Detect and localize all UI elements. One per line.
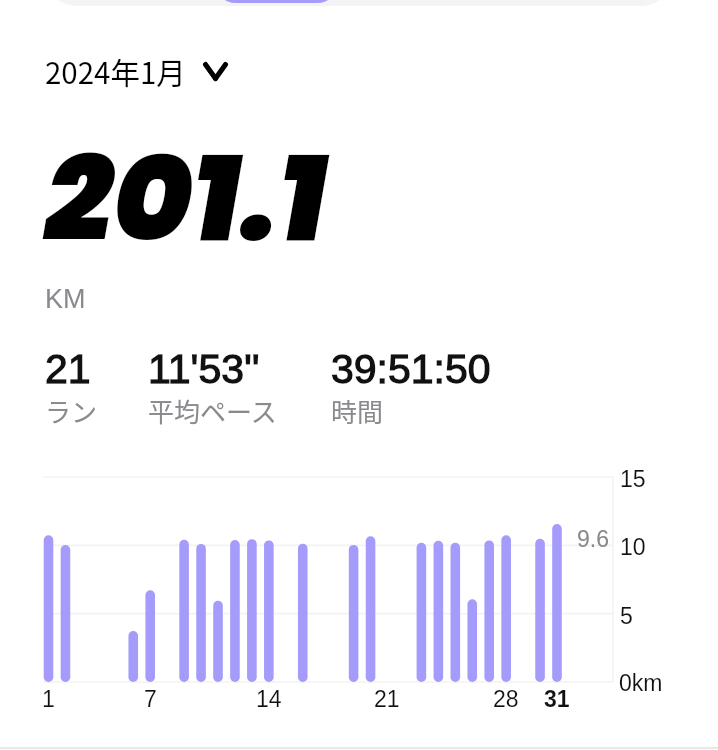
staticText: 時間 xyxy=(331,392,384,430)
staticText: ラン xyxy=(45,392,98,430)
other: Choose month xyxy=(203,62,228,81)
staticText: 14 xyxy=(256,686,282,712)
button[interactable]: 2024年1月 xyxy=(45,50,234,93)
staticText: 21 xyxy=(374,686,400,712)
staticText: 5 xyxy=(620,603,633,629)
staticText: 11'53'' xyxy=(148,346,260,392)
staticText: 9.6 xyxy=(577,526,609,552)
staticText: 21 xyxy=(45,346,91,392)
staticText: 平均ペース xyxy=(148,392,277,430)
staticText: 15 xyxy=(620,466,646,492)
staticText: 2024年1月 xyxy=(45,50,186,93)
button[interactable]: 21 xyxy=(45,346,102,430)
staticText: 0km xyxy=(619,670,663,696)
staticText: 1 xyxy=(42,686,55,712)
other: View switcher xyxy=(48,0,670,6)
staticText: 28 xyxy=(493,686,519,712)
button[interactable]: 39:51:50 xyxy=(331,346,495,430)
staticText: 39:51:50 xyxy=(331,346,491,392)
staticText: 201.1 xyxy=(45,114,327,282)
staticText: 10 xyxy=(620,534,646,560)
button[interactable]: Selected tab xyxy=(212,0,341,3)
other: Daily distance bar chart xyxy=(0,0,718,750)
staticText: KM xyxy=(45,284,86,314)
staticText: 31 xyxy=(544,686,570,712)
staticText: 7 xyxy=(144,686,157,712)
button[interactable]: 11'53'' xyxy=(148,346,281,430)
